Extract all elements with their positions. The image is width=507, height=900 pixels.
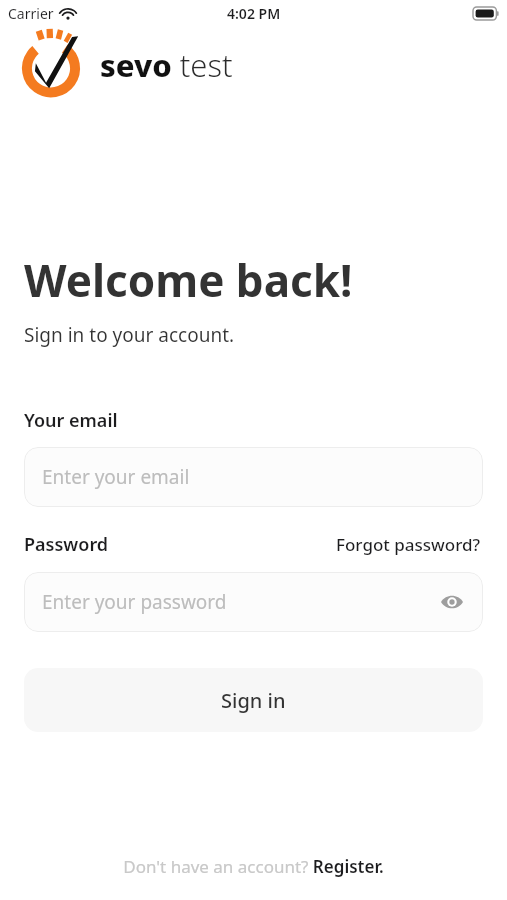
staticText: Don't have an account? Register. <box>123 855 384 878</box>
staticText: Your email <box>24 408 118 433</box>
button[interactable]: Forgot password? <box>334 531 483 558</box>
button[interactable]: Don't have an account? Register. <box>117 851 390 882</box>
staticText: Forgot password? <box>336 533 481 556</box>
staticText: Welcome back! <box>24 250 353 310</box>
staticText: 4:02 PM <box>227 4 281 23</box>
staticText: Sign in to your account. <box>24 322 235 348</box>
staticText: Enter your password <box>42 589 227 615</box>
button[interactable]: Show password <box>435 585 469 619</box>
button[interactable]: Sign in <box>24 668 483 732</box>
staticText: sevo test <box>100 44 233 86</box>
staticText: Password <box>24 532 109 557</box>
staticText: Sign in <box>221 687 286 714</box>
staticText: Carrier <box>8 4 54 23</box>
button[interactable]: Enter your email <box>24 447 483 507</box>
staticText: Enter your email <box>42 464 190 490</box>
button[interactable]: Enter your password <box>24 572 483 632</box>
